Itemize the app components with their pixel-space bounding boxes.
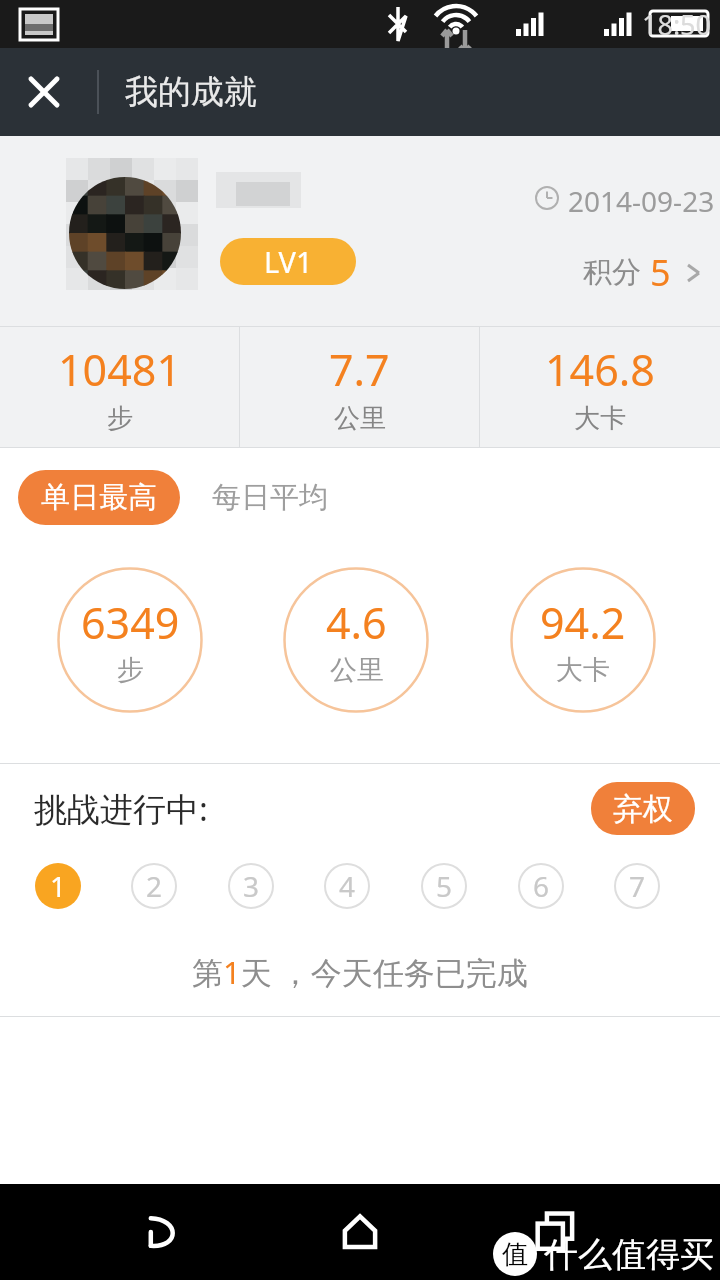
staticText: 2014-09-23 (568, 182, 715, 220)
button[interactable]: 4.6 (283, 567, 429, 713)
staticText: 5 (650, 248, 671, 297)
staticText: 3 (243, 867, 260, 905)
staticText: 大卡 (556, 653, 610, 687)
button[interactable]: Home (320, 1192, 400, 1272)
staticText: 18:50 (642, 6, 712, 43)
button[interactable]: 积分 (583, 248, 706, 297)
staticText: 7 (629, 867, 646, 905)
staticText: 4 (339, 867, 356, 905)
button[interactable]: Back (120, 1192, 200, 1272)
staticText: 146.8 (545, 340, 655, 399)
staticText: 单日最高 (41, 479, 157, 516)
button[interactable]: 6349 (57, 567, 203, 713)
button[interactable]: Close (0, 48, 88, 136)
staticText: 第1天 ，今天任务已完成 (192, 951, 528, 993)
button[interactable]: 7 (614, 863, 660, 909)
staticText: 积分 (583, 254, 641, 291)
staticText: 6349 (81, 593, 180, 652)
button[interactable]: 5 (421, 863, 467, 909)
button[interactable]: 弃权 (591, 782, 695, 835)
staticText: 4.6 (326, 593, 387, 652)
button[interactable]: 单日最高 (18, 470, 180, 525)
button[interactable]: 146.8 (480, 327, 720, 447)
button[interactable]: 10481 (0, 327, 239, 447)
staticText: 步 (107, 402, 133, 435)
button[interactable]: LV1 (0, 136, 720, 326)
staticText: 94.2 (540, 593, 626, 652)
staticText: 我的成就 (125, 71, 257, 113)
staticText: LV1 (264, 242, 313, 281)
button[interactable]: 94.2 (510, 567, 656, 713)
button[interactable]: 3 (228, 863, 274, 909)
button[interactable]: Recents (517, 1192, 597, 1272)
staticText: 大卡 (574, 402, 626, 435)
staticText: 1 (50, 867, 67, 905)
button[interactable]: 2 (131, 863, 177, 909)
staticText: 5 (436, 867, 453, 905)
staticText: 10481 (58, 340, 181, 399)
staticText: 挑战进行中: (34, 786, 208, 831)
button[interactable]: 4 (324, 863, 370, 909)
staticText: 每日平均 (212, 479, 328, 516)
staticText: 值 (502, 1238, 528, 1271)
button[interactable]: 1 (35, 863, 81, 909)
button[interactable]: 7.7 (240, 327, 479, 447)
button[interactable]: 6 (518, 863, 564, 909)
staticText: 弃权 (613, 790, 673, 828)
staticText: 什么值得买 (544, 1233, 714, 1276)
button[interactable]: LV1 (220, 238, 356, 285)
button[interactable]: 每日平均 (212, 479, 328, 516)
staticText: 6 (533, 867, 550, 905)
staticText: 公里 (334, 402, 386, 435)
staticText: 2 (146, 867, 163, 905)
staticText: 步 (117, 653, 144, 687)
staticText: 7.7 (329, 340, 390, 399)
staticText: 公里 (330, 653, 384, 687)
